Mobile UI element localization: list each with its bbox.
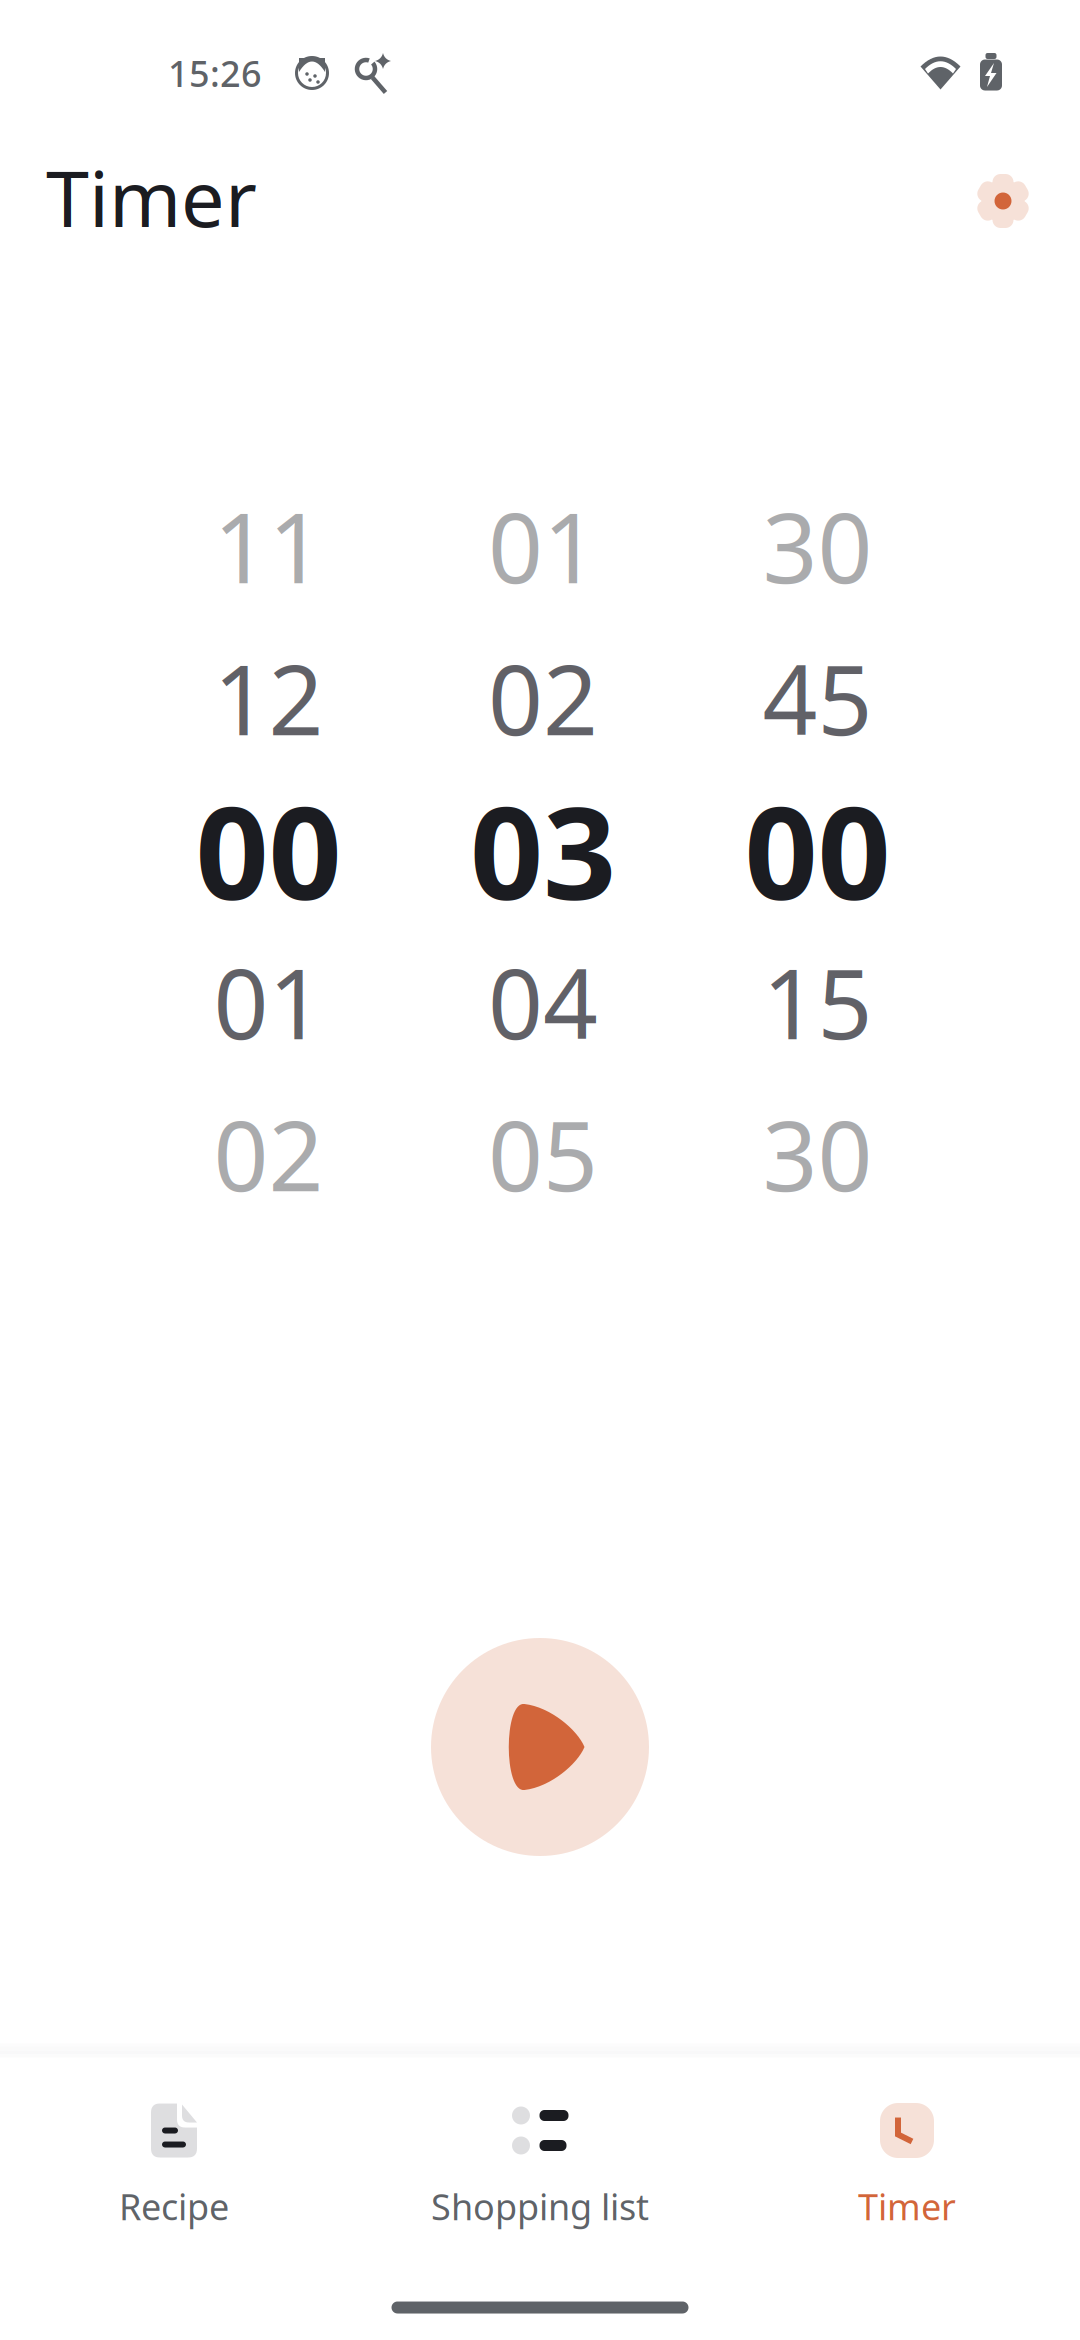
staticText: Timer (858, 2182, 956, 2230)
staticText: 05 (488, 1090, 598, 1218)
staticText: 01 (488, 482, 598, 610)
staticText: 15:26 (168, 49, 262, 97)
button[interactable]: Shopping list (360, 2057, 720, 2293)
staticText: 01 (213, 938, 323, 1066)
button[interactable]: Timer (720, 2057, 1080, 2293)
staticText: 00 (195, 765, 341, 935)
button[interactable]: Recipe (0, 2057, 360, 2293)
staticText: 02 (488, 634, 598, 762)
staticText: 03 (470, 765, 616, 935)
staticText: 11 (213, 482, 323, 610)
staticText: 12 (213, 634, 323, 762)
staticText: 30 (762, 1090, 872, 1218)
staticText: 02 (213, 1090, 323, 1218)
staticText: Shopping list (431, 2182, 649, 2230)
staticText: Recipe (119, 2182, 229, 2230)
staticText: Timer (46, 146, 257, 248)
staticText: 15 (762, 938, 872, 1066)
staticText: 04 (488, 938, 598, 1066)
staticText: 45 (762, 634, 872, 762)
staticText: 00 (744, 765, 890, 935)
staticText: 30 (762, 482, 872, 610)
button[interactable]: Start timer (431, 1638, 649, 1856)
button[interactable]: Settings (951, 145, 1055, 249)
